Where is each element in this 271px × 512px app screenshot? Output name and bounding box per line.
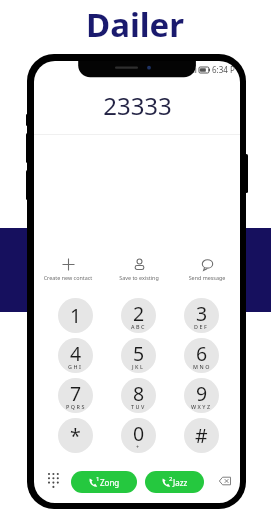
staticText: GHI [68, 363, 83, 370]
button[interactable]: 4 [58, 338, 93, 373]
staticText: Zong [100, 477, 120, 488]
staticText: * [70, 422, 81, 449]
staticText: 1 [96, 475, 100, 483]
button[interactable]: Save to existing [111, 257, 167, 282]
staticText: 0 [133, 420, 145, 447]
staticText: PQRS [66, 403, 86, 410]
staticText: Save to existing [111, 274, 167, 281]
button[interactable]: # [184, 418, 219, 453]
staticText: TUV [131, 403, 146, 410]
button[interactable]: 2 [121, 298, 156, 333]
button[interactable]: 1 [71, 471, 137, 493]
button[interactable]: 7 [58, 378, 93, 413]
staticText: 3 [196, 300, 208, 327]
staticText: 23333 [103, 89, 172, 122]
button[interactable]: 0 [121, 418, 156, 453]
staticText: 7 [70, 380, 82, 407]
button[interactable]: 5 [121, 338, 156, 373]
staticText: Dailer [86, 2, 185, 47]
staticText: Send message [179, 274, 235, 281]
button[interactable]: Dialpad [43, 470, 63, 490]
button[interactable]: 9 [184, 378, 219, 413]
button[interactable]: 1 [58, 298, 93, 333]
staticText: 8 [133, 380, 145, 407]
button[interactable]: Backspace [215, 471, 235, 491]
staticText: 5 [133, 340, 145, 367]
button[interactable]: 8 [121, 378, 156, 413]
button[interactable]: * [58, 418, 93, 453]
staticText: 2 [169, 475, 173, 483]
staticText: ABC [131, 323, 146, 330]
staticText: 4 [70, 340, 82, 367]
staticText: + [136, 443, 141, 450]
staticText: WXYZ [191, 403, 212, 410]
staticText: MNO [193, 363, 211, 370]
button[interactable]: Send message [179, 257, 235, 282]
staticText: Jazz [173, 477, 188, 488]
staticText: DEF [194, 323, 209, 330]
button[interactable]: 6 [184, 338, 219, 373]
staticText: 2 [133, 300, 145, 327]
staticText: Create new contact [35, 274, 101, 281]
staticText: 6:34 P [212, 64, 235, 75]
button[interactable]: 3 [184, 298, 219, 333]
staticText: # [195, 422, 208, 449]
staticText: 1 [70, 302, 82, 329]
button[interactable]: 2 [145, 471, 204, 493]
staticText: 9 [196, 380, 208, 407]
staticText: 6 [196, 340, 208, 367]
button[interactable]: Create new contact [35, 257, 101, 282]
staticText: JKL [132, 363, 145, 370]
